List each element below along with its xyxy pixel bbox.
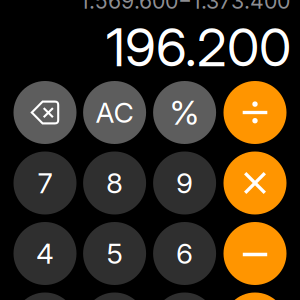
button[interactable]: 1	[13, 292, 76, 300]
button[interactable]: 2	[83, 292, 146, 300]
staticText: 7	[37, 166, 52, 200]
button[interactable]: 6	[153, 222, 216, 285]
button[interactable]: 7	[13, 151, 76, 214]
staticText: 5	[107, 237, 123, 270]
staticText: %	[170, 92, 200, 133]
button[interactable]: Divide	[223, 81, 286, 144]
button[interactable]: 9	[153, 151, 216, 214]
button[interactable]: Percent	[153, 81, 216, 144]
button[interactable]: 3	[153, 292, 216, 300]
staticText: AC	[96, 96, 134, 129]
staticText: 1.569.600−1.373.400	[80, 0, 290, 14]
staticText: 196.200	[106, 15, 291, 79]
button[interactable]: 8	[83, 151, 146, 214]
staticText: 4	[36, 237, 54, 270]
button[interactable]: Multiply	[223, 151, 286, 214]
staticText: 8	[106, 166, 123, 200]
button[interactable]: Add	[223, 292, 286, 300]
button[interactable]: Delete	[13, 81, 76, 144]
button[interactable]: 4	[13, 222, 76, 285]
button[interactable]: 5	[83, 222, 146, 285]
button[interactable]: All clear	[83, 81, 146, 144]
button[interactable]: Subtract	[223, 222, 286, 285]
staticText: 6	[176, 237, 193, 270]
staticText: 9	[176, 166, 193, 200]
